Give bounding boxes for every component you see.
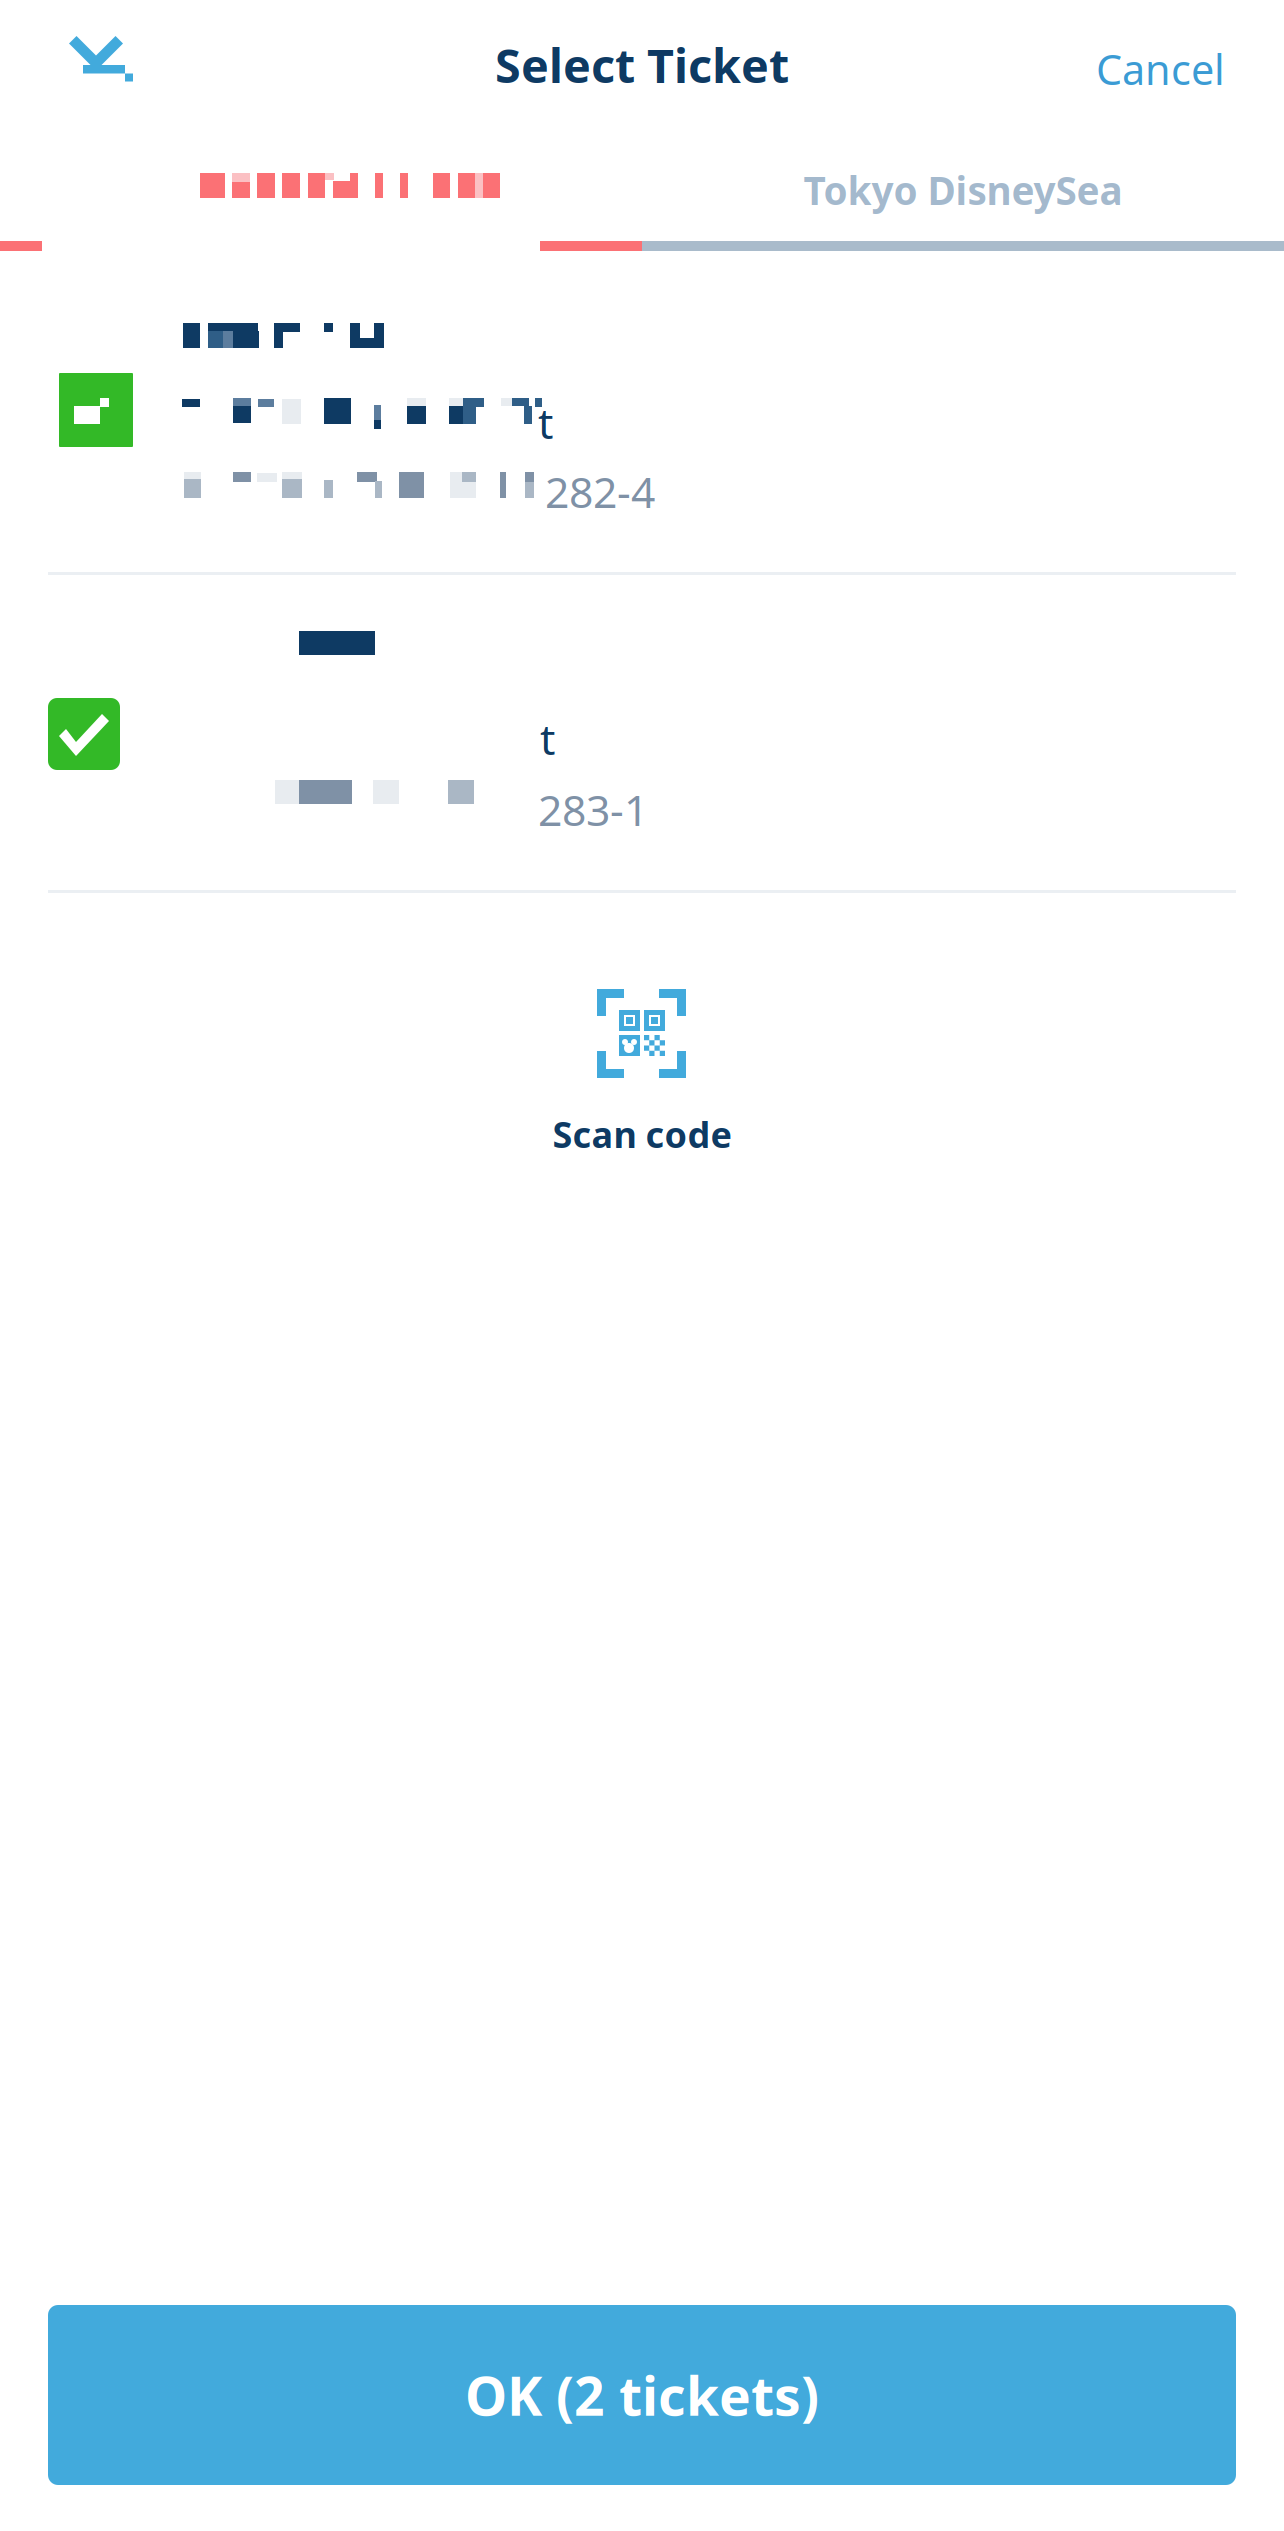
button[interactable]: OK (2 tickets) (48, 2305, 1236, 2485)
staticText: Cancel (1096, 42, 1225, 96)
button[interactable]: Cancel (1025, 10, 1225, 128)
button[interactable]: Ticket 283-1 (0, 575, 1284, 890)
staticText: 283-1 (538, 781, 648, 838)
staticText: Tokyo DisneySea (803, 164, 1122, 216)
staticText: OK (2 tickets) (465, 2360, 819, 2430)
button[interactable]: Tokyo Disneyland (0, 118, 642, 228)
staticText: t (540, 710, 555, 767)
button[interactable]: Tokyo DisneySea (642, 135, 1284, 245)
button[interactable]: Ticket 282-4 (0, 262, 1284, 572)
staticText: Select Ticket (495, 34, 789, 96)
button[interactable]: Scan code (482, 989, 802, 1189)
staticText: t (538, 394, 553, 451)
staticText: Scan code (552, 1110, 731, 1158)
button[interactable]: Collapse (44, 0, 174, 118)
staticText: 282-4 (545, 463, 655, 520)
